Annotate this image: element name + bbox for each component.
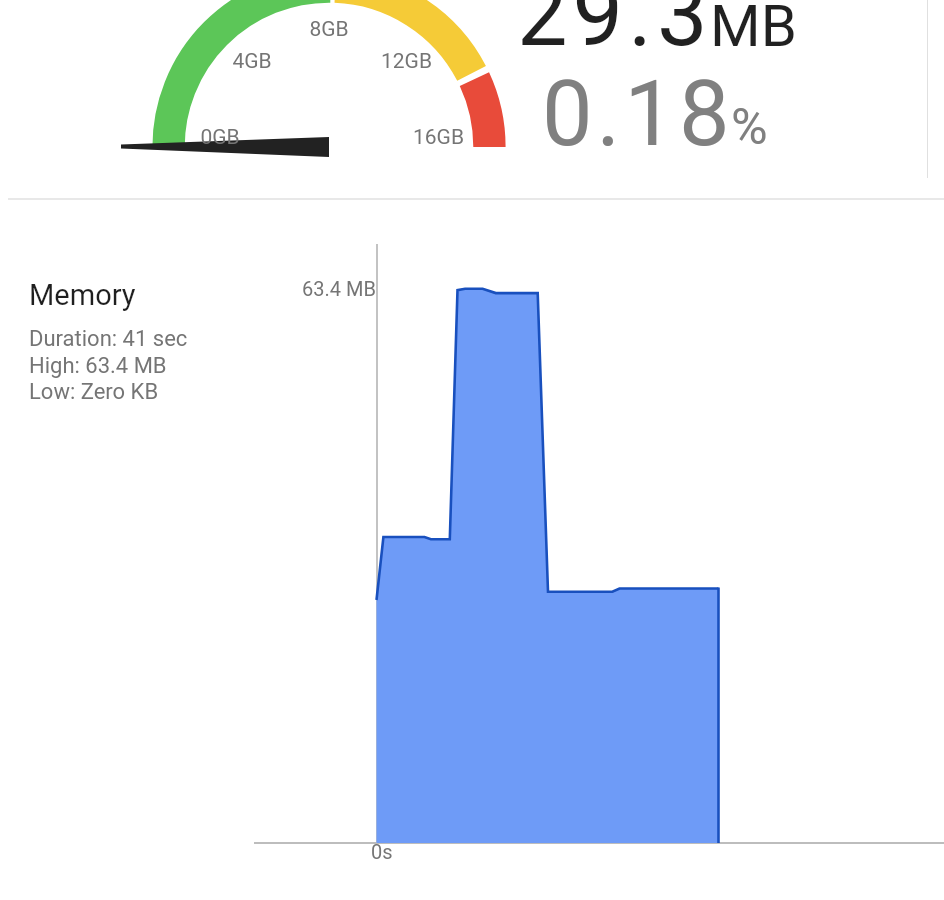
staticText: Duration: 41 sec High: 63.4 MB Low: Zero… [29, 326, 188, 404]
staticText: 0.18 [542, 62, 734, 167]
staticText: Memory [29, 278, 136, 312]
staticText: 0GB [200, 125, 240, 150]
staticText: 16GB [413, 125, 464, 150]
button[interactable]: Memory timeline chart, duration 41 secon… [0, 200, 944, 900]
staticText: 29.3 [517, 0, 713, 67]
staticText: 4GB [232, 49, 272, 74]
staticText: % [731, 98, 768, 157]
staticText: 8GB [309, 17, 349, 42]
staticText: 0s [371, 840, 393, 863]
staticText: 12GB [381, 49, 432, 74]
staticText: MB [710, 0, 797, 60]
staticText: 63.4 MB [302, 277, 376, 300]
button[interactable]: Device memory gauge, 29.3 MB, 0.18 perce… [0, 0, 944, 198]
